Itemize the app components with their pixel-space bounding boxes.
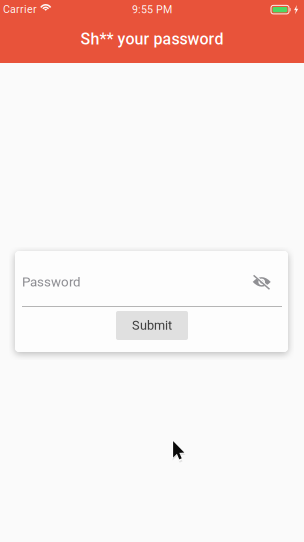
- staticText: Password: [22, 274, 81, 290]
- button[interactable]: Password: [15, 262, 288, 302]
- staticText: Carrier: [3, 3, 37, 15]
- staticText: Submit: [132, 318, 172, 333]
- button[interactable]: Submit: [116, 311, 188, 340]
- staticText: Sh** your password: [80, 30, 223, 48]
- staticText: 9:55 PM: [132, 3, 172, 16]
